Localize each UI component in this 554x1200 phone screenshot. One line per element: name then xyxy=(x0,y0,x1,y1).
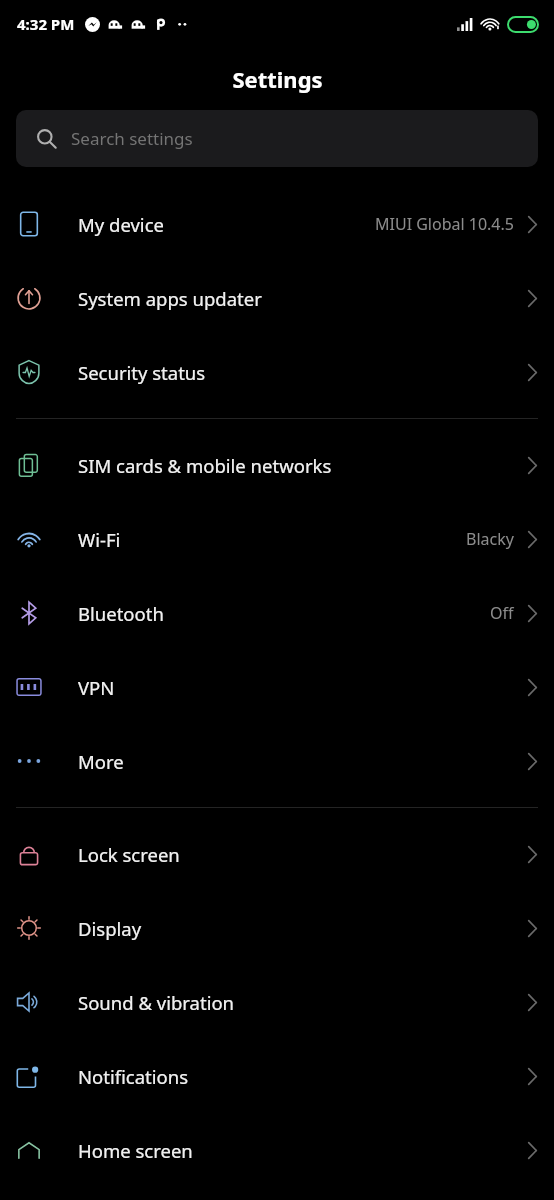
button[interactable]: Bluetooth xyxy=(0,576,554,650)
staticText: Off xyxy=(490,602,514,624)
button[interactable]: Display xyxy=(0,891,554,965)
other: Open My device xyxy=(527,215,538,234)
other: Open Security status xyxy=(527,363,538,382)
other: Open Home screen xyxy=(527,1141,538,1160)
staticText: MIUI Global 10.4.5 xyxy=(375,213,514,235)
staticText: Sound & vibration xyxy=(78,990,527,1015)
staticText: Security status xyxy=(78,360,527,385)
staticText: System apps updater xyxy=(78,286,527,311)
button[interactable]: My device xyxy=(0,187,554,261)
button[interactable]: VPN xyxy=(0,650,554,724)
button[interactable]: Wi-Fi xyxy=(0,502,554,576)
staticText: Bluetooth xyxy=(78,601,490,626)
other: Open More xyxy=(527,752,538,771)
other: Open System apps updater xyxy=(527,289,538,308)
other: Open SIM cards & mobile networks xyxy=(527,456,538,475)
button[interactable]: Lock screen xyxy=(0,817,554,891)
staticText: Notifications xyxy=(78,1064,527,1089)
staticText: 4:32 PM xyxy=(17,14,75,34)
other: Open VPN xyxy=(527,678,538,697)
button[interactable]: SIM cards & mobile networks xyxy=(0,428,554,502)
staticText: Wi-Fi xyxy=(78,527,466,552)
other: Open Bluetooth xyxy=(527,604,538,623)
staticText: Blacky xyxy=(466,528,514,550)
button[interactable]: Security status xyxy=(0,335,554,409)
staticText: Home screen xyxy=(78,1138,527,1163)
button[interactable]: Notifications xyxy=(0,1039,554,1113)
other: Open Sound & vibration xyxy=(527,993,538,1012)
button[interactable]: Home screen xyxy=(0,1113,554,1187)
staticText: More xyxy=(78,749,527,774)
staticText: SIM cards & mobile networks xyxy=(78,453,527,478)
button[interactable]: System apps updater xyxy=(0,261,554,335)
staticText: VPN xyxy=(78,675,527,700)
other: Open Lock screen xyxy=(527,845,538,864)
button[interactable]: Search settings xyxy=(16,110,538,167)
button[interactable]: More xyxy=(0,724,554,798)
staticText: Search settings xyxy=(71,127,193,150)
button[interactable]: Sound & vibration xyxy=(0,965,554,1039)
staticText: Display xyxy=(78,916,527,941)
staticText: Lock screen xyxy=(78,842,527,867)
other: Open Notifications xyxy=(527,1067,538,1086)
other: Open Wi-Fi xyxy=(527,530,538,549)
staticText: Settings xyxy=(232,64,323,94)
staticText: My device xyxy=(78,212,375,237)
other: Open Display xyxy=(527,919,538,938)
